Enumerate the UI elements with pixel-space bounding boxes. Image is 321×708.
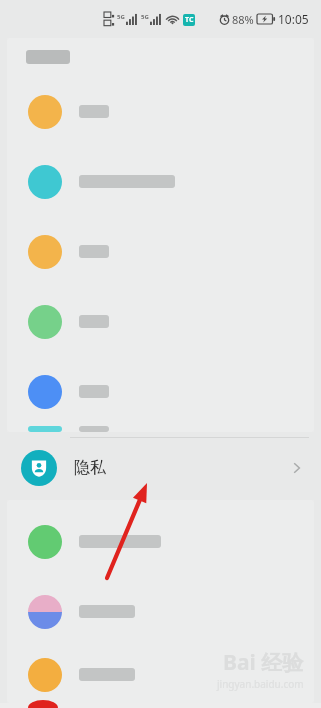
button[interactable] <box>7 506 314 576</box>
button[interactable]: Privacy <box>0 437 321 499</box>
staticText: 隐私 <box>74 458 106 478</box>
button[interactable] <box>7 286 314 356</box>
staticText: 5G <box>141 13 149 21</box>
button[interactable] <box>7 216 314 286</box>
staticText: 5G <box>117 13 125 21</box>
button[interactable] <box>7 38 314 76</box>
staticText: jingyan.baidu.com <box>217 677 304 691</box>
staticText: 88% <box>232 12 254 27</box>
button[interactable] <box>7 76 314 146</box>
staticText: 10:05 <box>278 11 309 27</box>
button[interactable] <box>7 576 314 646</box>
other: Privacy <box>21 450 57 486</box>
staticText: Bai 经验 <box>223 648 304 677</box>
button[interactable] <box>7 426 314 432</box>
button[interactable] <box>7 356 314 426</box>
button[interactable] <box>7 146 314 216</box>
button[interactable] <box>7 646 314 703</box>
staticText: TC <box>185 15 194 25</box>
